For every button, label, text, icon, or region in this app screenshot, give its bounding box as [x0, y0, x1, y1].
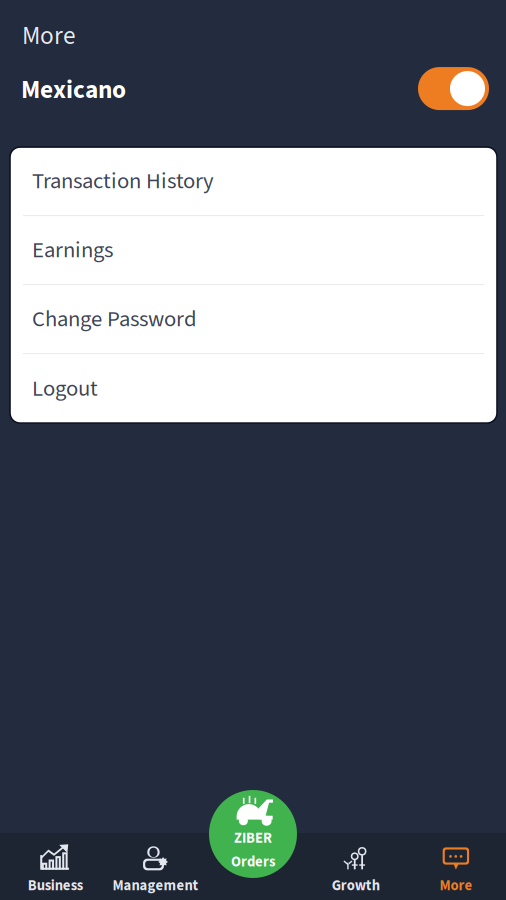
button[interactable]: Logout: [10, 354, 497, 423]
staticText: More: [439, 875, 472, 896]
button[interactable]: Management: [105, 833, 205, 900]
button[interactable]: Earnings: [10, 216, 497, 285]
button[interactable]: Orders: [209, 790, 297, 878]
staticText: Business: [28, 875, 83, 896]
staticText: Orders: [231, 851, 275, 872]
button[interactable]: Growth: [305, 833, 406, 900]
staticText: Logout: [32, 372, 98, 405]
staticText: ZIBER: [234, 828, 272, 848]
staticText: Management: [112, 875, 198, 896]
button[interactable]: Business: [5, 833, 105, 900]
button[interactable]: Restaurant open toggle: [418, 67, 489, 110]
button[interactable]: Change Password: [10, 285, 497, 354]
staticText: Transaction History: [32, 165, 214, 197]
staticText: More: [22, 18, 76, 54]
staticText: Mexicano: [21, 72, 126, 108]
button[interactable]: More: [406, 833, 506, 900]
staticText: Earnings: [32, 234, 113, 266]
staticText: Change Password: [32, 303, 197, 335]
button[interactable]: Transaction History: [10, 147, 497, 216]
staticText: Growth: [332, 875, 380, 896]
